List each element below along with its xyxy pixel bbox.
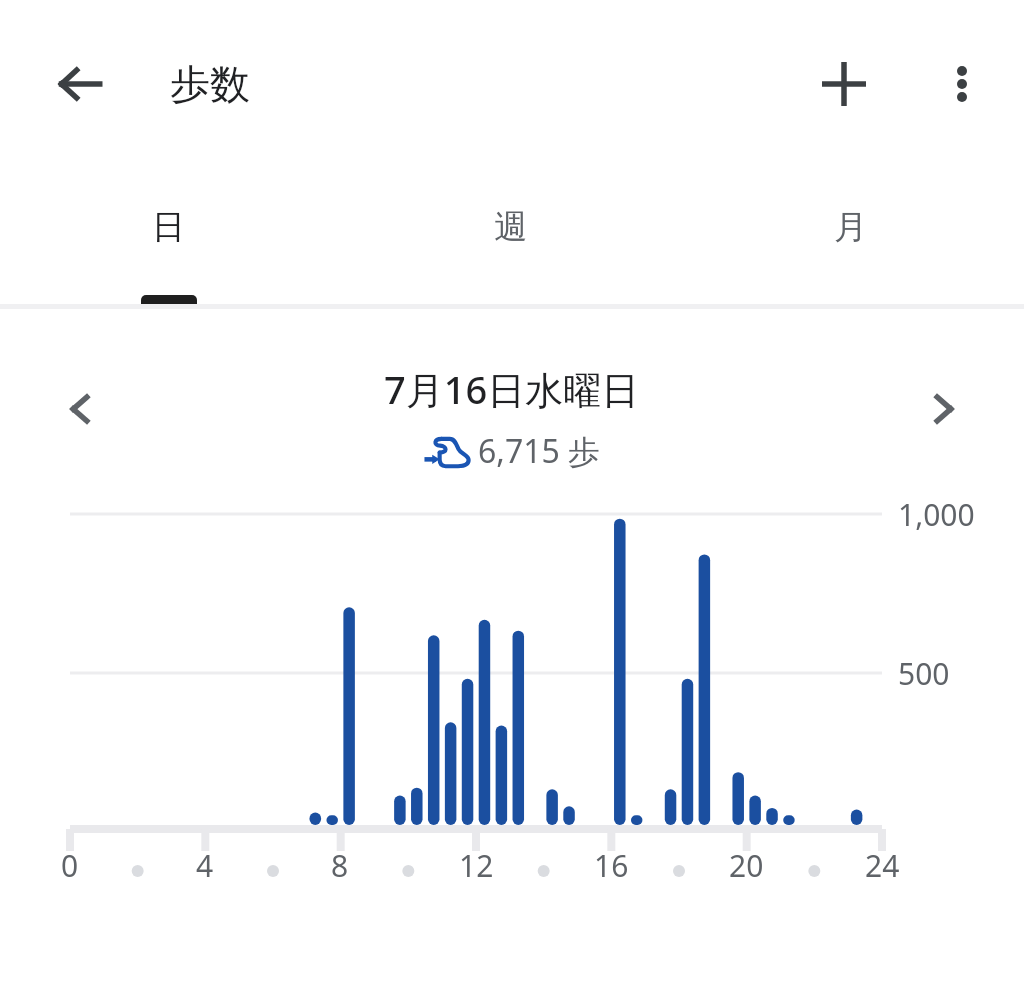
staticText: 20 xyxy=(729,845,764,886)
button[interactable]: 月 xyxy=(740,152,960,302)
staticText: 16 xyxy=(594,845,629,886)
staticText: 12 xyxy=(459,845,494,886)
staticText: 24 xyxy=(865,845,900,886)
button[interactable]: 週 xyxy=(400,152,620,302)
staticText: 7月16日水曜日 xyxy=(384,363,640,415)
button[interactable]: Add xyxy=(806,46,882,122)
button[interactable]: Next day xyxy=(906,371,982,447)
staticText: 歩数 xyxy=(170,59,250,109)
button[interactable]: Back xyxy=(42,46,118,122)
staticText: 4 xyxy=(196,845,214,886)
staticText: 8 xyxy=(331,845,349,886)
button[interactable]: 日 xyxy=(58,152,278,302)
staticText: 0 xyxy=(61,845,79,886)
button[interactable]: More options xyxy=(924,46,1000,122)
staticText: 6,715 歩 xyxy=(478,429,601,473)
staticText: 週 xyxy=(494,206,527,248)
staticText: 500 xyxy=(898,653,950,694)
staticText: 日 xyxy=(152,206,185,248)
staticText: 月 xyxy=(834,206,867,248)
staticText: 1,000 xyxy=(898,494,975,535)
button[interactable]: Previous day xyxy=(42,371,118,447)
